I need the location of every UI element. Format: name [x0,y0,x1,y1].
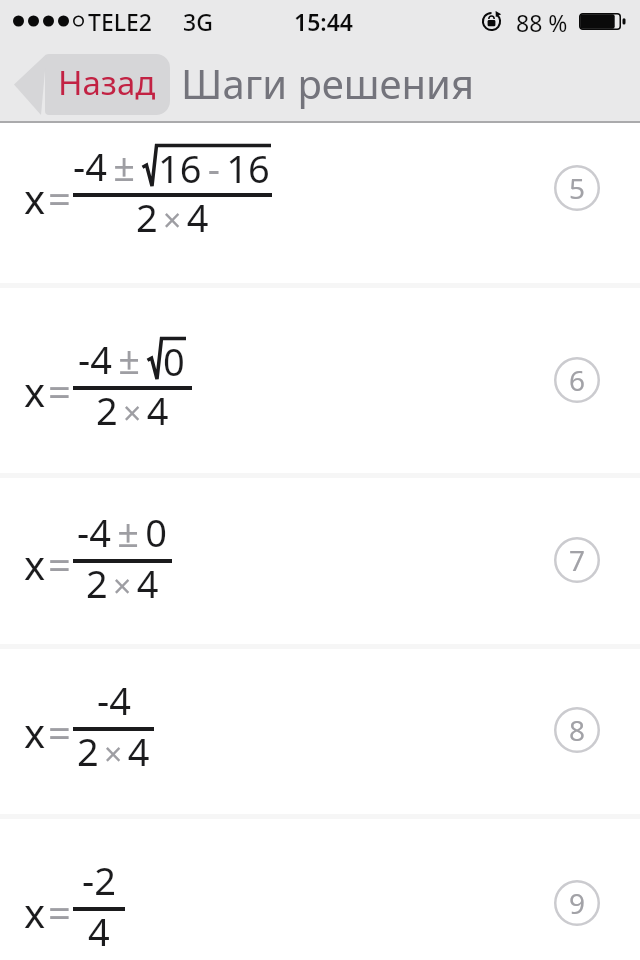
staticText: 8 [569,711,586,749]
staticText: = [48,537,71,591]
staticText: x [24,171,46,225]
button[interactable]: x [0,285,640,475]
staticText: 15:44 [294,6,353,37]
staticText: 16 - 16 [158,142,270,192]
staticText: 0 [163,335,185,385]
staticText: 2 × 4 [77,725,150,777]
button[interactable]: x [0,475,640,646]
staticText: 5 [569,169,586,207]
staticText: -4 [97,674,131,726]
staticText: 2 × 4 [96,384,169,436]
staticText: 6 [569,361,586,399]
staticText: = [48,705,71,759]
staticText: 4 [88,905,110,957]
staticText: -4 ± 0 [77,506,168,558]
staticText: = [48,885,71,939]
button[interactable]: x [0,646,640,816]
button[interactable]: x [0,122,640,285]
staticText: 2 × 4 [136,191,209,243]
staticText: 3G [183,6,213,37]
staticText: 2 × 4 [86,557,159,609]
staticText: x [24,885,46,939]
staticText: x [24,705,46,759]
staticText: -4 ± [73,140,142,192]
staticText: Назад [58,60,156,105]
staticText: TELE2 [88,6,152,37]
staticText: 7 [569,541,586,579]
staticText: 9 [569,884,586,922]
staticText: Шаги решения [181,56,475,110]
staticText: = [48,171,71,225]
staticText: x [24,364,46,418]
staticText: = [48,364,71,418]
button[interactable]: Назад [14,54,170,115]
staticText: -4 ± [78,333,147,385]
button[interactable]: x [0,816,640,960]
staticText: -2 [82,854,116,906]
staticText: 88 % [516,7,568,38]
staticText: x [24,537,46,591]
